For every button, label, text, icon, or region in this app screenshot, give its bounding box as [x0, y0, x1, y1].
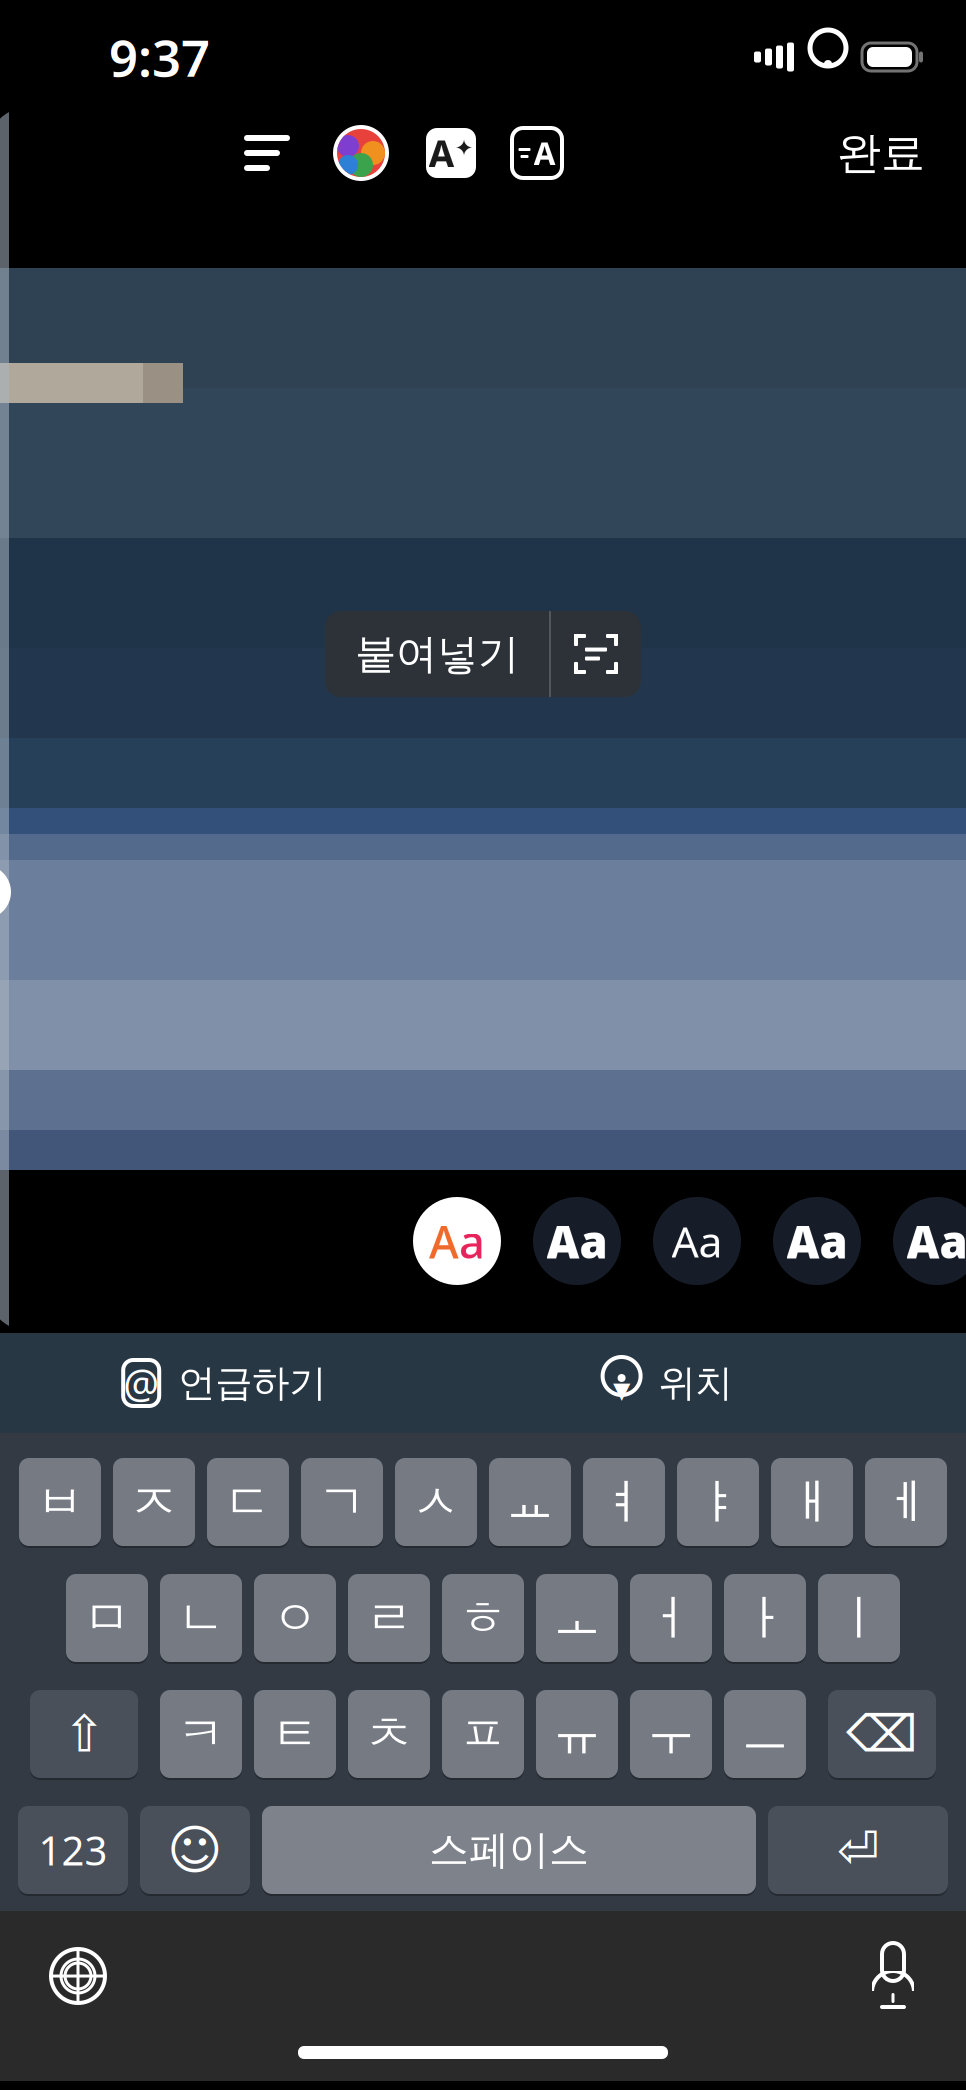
button[interactable]: ㅑ [677, 1455, 759, 1549]
button[interactable]: 글꼴 Aa [771, 1195, 863, 1287]
button[interactable]: ㅋ [160, 1687, 242, 1781]
button[interactable]: ⏎ [768, 1803, 948, 1897]
button[interactable]: ㅈ [113, 1455, 195, 1549]
staticText: 123 [38, 1823, 107, 1876]
button[interactable]: ㄷ [207, 1455, 289, 1549]
button[interactable]: 텍스트 서식 [494, 116, 580, 190]
staticText: 언급하기 [178, 1360, 326, 1406]
button[interactable]: ㅁ [66, 1571, 148, 1665]
button[interactable]: ㅔ [865, 1455, 947, 1549]
staticText: ㄱ [318, 1472, 366, 1531]
button[interactable]: 텍스트 정렬 [220, 117, 314, 189]
staticText: ㅔ [882, 1472, 930, 1531]
staticText: ▾ [613, 1370, 630, 1409]
button[interactable]: ㅐ [771, 1455, 853, 1549]
staticText: ㄷ [224, 1472, 272, 1531]
button[interactable]: ㅊ [348, 1687, 430, 1781]
staticText: ㅂ [36, 1472, 84, 1531]
staticText: Aa [906, 1211, 966, 1271]
button[interactable]: 글꼴 Aa [651, 1195, 743, 1287]
staticText: ㅍ [459, 1704, 507, 1763]
staticText: ㄴ [177, 1588, 225, 1647]
staticText: 9:37 [109, 23, 210, 91]
button[interactable]: ㅅ [395, 1455, 477, 1549]
button[interactable]: ㅂ [19, 1455, 101, 1549]
staticText: ㅛ [506, 1472, 554, 1531]
button[interactable]: ㅗ [536, 1571, 618, 1665]
staticText: a [459, 1211, 485, 1271]
staticText: 붙여넣기 [355, 629, 519, 679]
staticText: A [533, 132, 555, 174]
button[interactable]: ⌫ [828, 1687, 936, 1781]
button[interactable]: 글꼴 Aa [411, 1195, 503, 1287]
staticText: A [428, 128, 454, 178]
staticText: ㅕ [600, 1472, 648, 1531]
button[interactable]: ㅕ [583, 1455, 665, 1549]
staticText: Aa [786, 1211, 847, 1271]
staticText: ⇧ [63, 1705, 105, 1763]
button[interactable]: 색상 [314, 114, 408, 192]
button[interactable]: ▾ [577, 1345, 757, 1421]
staticText: 스페이스 [429, 1825, 589, 1874]
button[interactable]: ㅇ [254, 1571, 336, 1665]
staticText: ✦ [454, 135, 473, 161]
staticText: Aa [546, 1211, 607, 1271]
button[interactable]: 123 [18, 1803, 128, 1897]
button[interactable]: ㅛ [489, 1455, 571, 1549]
button[interactable]: ㄱ [301, 1455, 383, 1549]
staticText: ㅏ [741, 1588, 789, 1647]
button[interactable]: 완료 [817, 112, 945, 194]
staticText: ㅜ [647, 1704, 695, 1763]
button[interactable]: 다음 키보드 [19, 1933, 137, 2019]
staticText: 완료 [837, 126, 925, 180]
staticText: ㅣ [835, 1588, 883, 1647]
staticText: ㅠ [553, 1704, 601, 1763]
staticText: ㅓ [647, 1588, 695, 1647]
staticText: ㅐ [788, 1472, 836, 1531]
staticText: ㅌ [271, 1704, 319, 1763]
staticText: ㅎ [459, 1588, 507, 1647]
staticText: ⏎ [837, 1821, 879, 1879]
button[interactable]: ㅎ [442, 1571, 524, 1665]
button[interactable]: ㄴ [160, 1571, 242, 1665]
button[interactable]: ㄹ [348, 1571, 430, 1665]
button[interactable]: 스페이스 [262, 1803, 756, 1897]
staticText: ㅋ [177, 1704, 225, 1763]
button[interactable]: 텍스트 스캔 [551, 611, 641, 697]
staticText: Aa [671, 1213, 722, 1269]
button[interactable]: ㅓ [630, 1571, 712, 1665]
staticText: ☺ [167, 1820, 223, 1880]
staticText: ㅗ [553, 1588, 601, 1647]
button[interactable]: ㅣ [818, 1571, 900, 1665]
button[interactable]: 글꼴 효과 [408, 116, 494, 190]
staticText: A [429, 1211, 459, 1271]
staticText: ㅅ [412, 1472, 460, 1531]
staticText: ㅡ [741, 1704, 789, 1763]
button[interactable]: ⇧ [30, 1687, 138, 1781]
staticText: ㅁ [83, 1588, 131, 1647]
staticText: ㅊ [365, 1704, 413, 1763]
staticText: ㅇ [271, 1588, 319, 1647]
staticText: ⌫ [846, 1705, 918, 1763]
button[interactable]: 받아쓰기 [839, 1933, 947, 2019]
button[interactable]: @ [96, 1346, 350, 1420]
button[interactable]: 글꼴 Aa [891, 1195, 966, 1287]
staticText: ㅈ [130, 1472, 178, 1531]
button[interactable]: ㅍ [442, 1687, 524, 1781]
staticText: 위치 [659, 1360, 733, 1406]
button[interactable]: ㅜ [630, 1687, 712, 1781]
button[interactable]: ㅠ [536, 1687, 618, 1781]
staticText: ㅑ [694, 1472, 742, 1531]
button[interactable]: 글꼴 Aa [531, 1195, 623, 1287]
button[interactable]: ㅌ [254, 1687, 336, 1781]
button[interactable]: ㅡ [724, 1687, 806, 1781]
staticText: ㄹ [365, 1588, 413, 1647]
staticText: @ [123, 1356, 159, 1409]
button[interactable]: 붙여넣기 [325, 611, 549, 697]
button[interactable]: ㅏ [724, 1571, 806, 1665]
button[interactable]: ☺ [140, 1803, 250, 1897]
